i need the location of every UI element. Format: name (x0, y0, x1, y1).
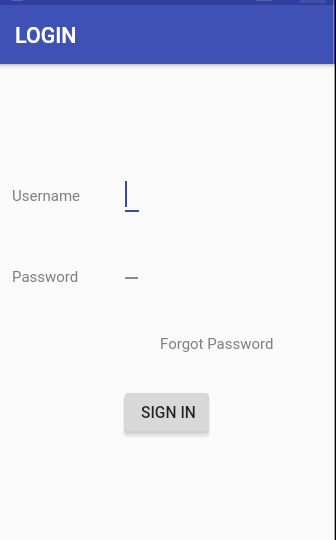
button[interactable]: Forgot Password (160, 335, 274, 353)
staticText: Username (12, 187, 81, 205)
button[interactable]: Password input (0, 262, 336, 292)
staticText: SIGN IN (141, 404, 196, 422)
staticText: LOGIN (15, 23, 77, 48)
staticText: Forgot Password (160, 335, 274, 353)
button[interactable]: SIGN IN (125, 393, 209, 431)
button[interactable]: Username input (0, 176, 336, 214)
staticText: Password (12, 268, 79, 286)
